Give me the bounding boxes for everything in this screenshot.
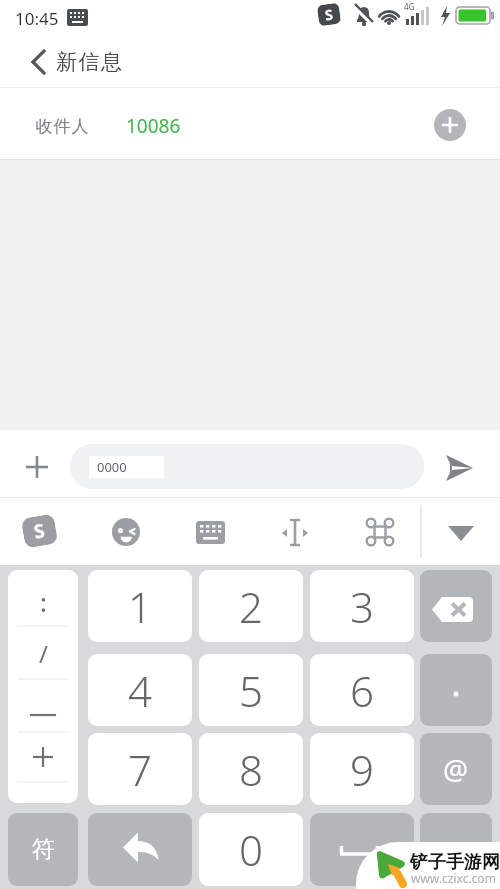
button[interactable]: 6 [310,654,414,726]
staticText: 铲子手游网 [410,851,500,870]
staticText: www.czjxc.com [411,870,496,883]
staticText: 7 [128,741,152,798]
staticText: 新信息 [56,49,124,75]
staticText: 1 [128,578,152,635]
button[interactable] [410,505,470,560]
button[interactable] [420,813,492,889]
staticText: S [324,4,334,24]
staticText: S [32,517,47,545]
button[interactable]: 9 [310,733,414,805]
button[interactable] [90,505,150,560]
button[interactable]: 0 [199,813,303,886]
button[interactable] [88,813,192,886]
staticText: 2 [239,578,263,635]
staticText: 4G [404,1,415,11]
button[interactable] [20,40,160,84]
button[interactable] [20,450,54,484]
staticText: 9 [350,741,374,798]
button[interactable]: 7 [88,733,192,805]
button[interactable] [420,570,492,642]
staticText: 3 [350,578,374,635]
button[interactable]: @ [420,733,492,805]
button[interactable] [330,505,390,560]
button[interactable] [170,505,230,560]
button[interactable]: 8 [199,733,303,805]
button[interactable] [8,742,78,772]
button[interactable] [8,700,78,730]
button[interactable]: 0000 [70,444,424,489]
button[interactable]: / [8,637,78,665]
staticText: 10:45 [15,7,59,30]
button[interactable] [10,505,70,560]
staticText: 0000 [97,458,127,476]
staticText: 10086 [126,113,181,139]
staticText: 收件人 [35,116,89,137]
staticText: 4 [128,662,152,719]
button[interactable]: : [8,585,78,615]
button[interactable]: S [21,513,58,549]
staticText: 0 [239,821,263,878]
button[interactable] [310,813,414,886]
staticText: 8 [239,741,263,798]
button[interactable]: 5 [199,654,303,726]
button[interactable]: 符 [8,813,78,886]
staticText: : [40,585,47,615]
button[interactable]: 1 [88,570,192,642]
staticText: / [39,637,48,665]
staticText: 6 [350,662,374,719]
button[interactable]: 3 [310,570,414,642]
staticText: @ [443,750,469,788]
button[interactable]: 4 [88,654,192,726]
button[interactable] [420,654,492,726]
button[interactable] [434,450,478,484]
button[interactable]: 2 [199,570,303,642]
staticText: 5 [239,662,263,719]
button[interactable] [250,505,310,560]
staticText: 符 [32,835,55,864]
button[interactable] [434,109,466,141]
